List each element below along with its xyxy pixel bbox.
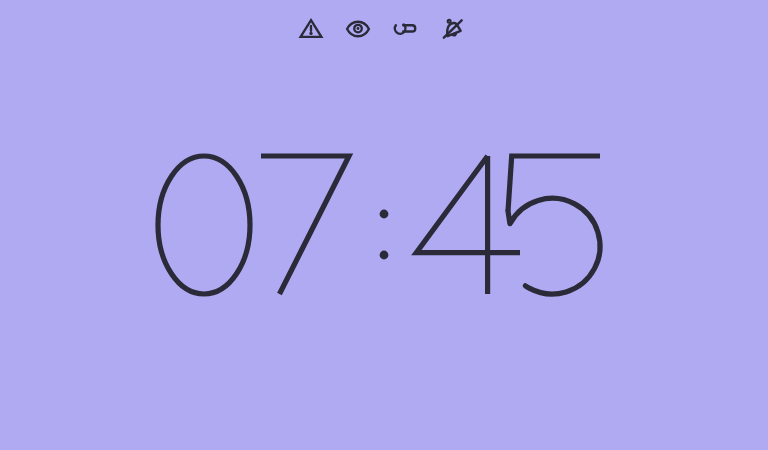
button[interactable]: Notifications off — [437, 14, 467, 44]
button[interactable]: Warning — [296, 14, 326, 44]
button[interactable] — [0, 0, 768, 450]
button[interactable]: Settings — [390, 14, 420, 44]
button[interactable]: Visibility — [343, 14, 373, 44]
